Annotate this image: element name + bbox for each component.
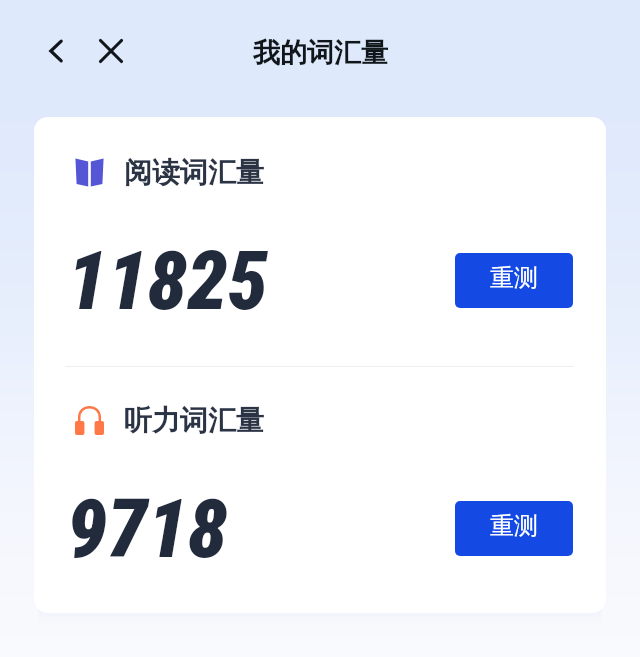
button[interactable]: 重测 xyxy=(455,253,573,308)
staticText: 11825 xyxy=(67,234,268,329)
staticText: 9718 xyxy=(67,482,228,577)
staticText: 重测 xyxy=(490,263,538,293)
staticText: 阅读词汇量 xyxy=(124,155,264,190)
button[interactable]: 重测 xyxy=(455,501,573,556)
button[interactable]: Back xyxy=(36,31,76,71)
staticText: 我的词汇量 xyxy=(253,36,388,70)
button[interactable]: Close xyxy=(91,31,131,71)
staticText: 听力词汇量 xyxy=(124,403,264,438)
staticText: 重测 xyxy=(490,511,538,541)
